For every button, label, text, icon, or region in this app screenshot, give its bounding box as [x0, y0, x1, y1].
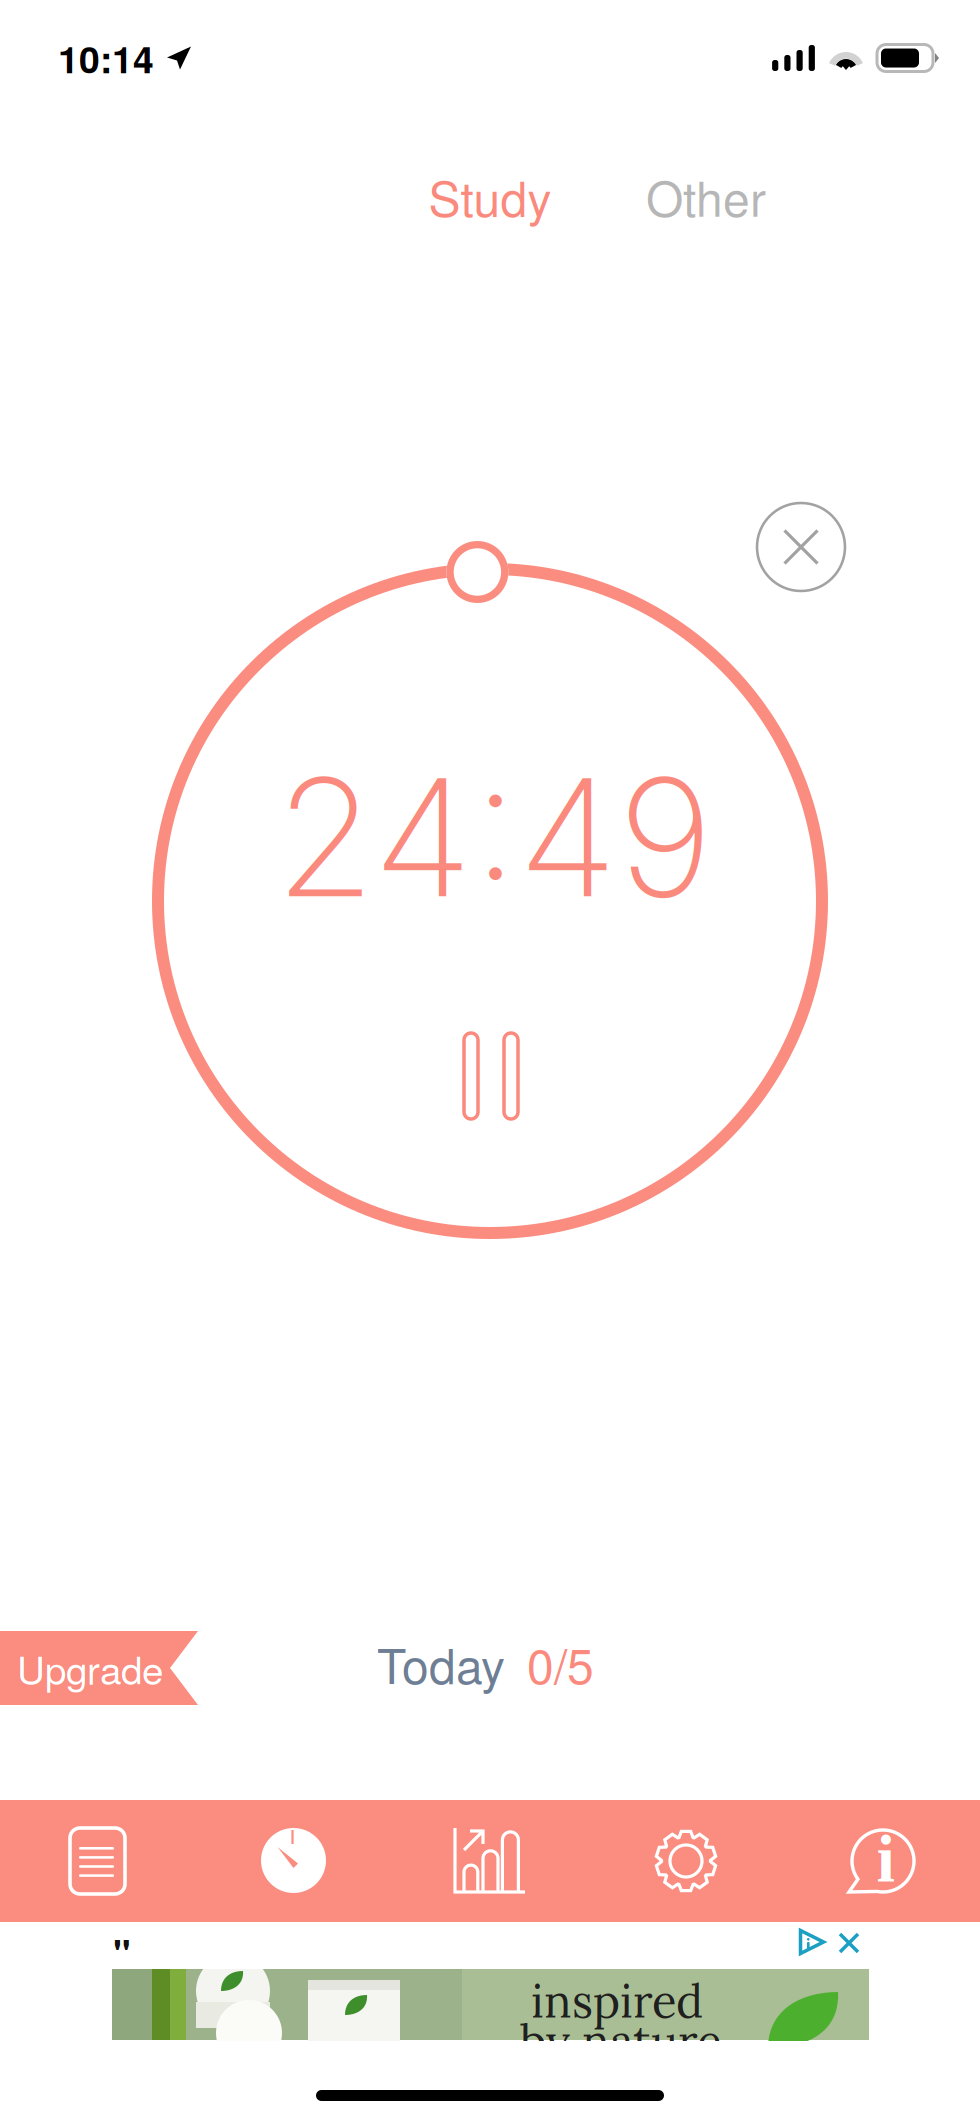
- button[interactable]: Study: [382, 148, 598, 244]
- staticText: by nature: [520, 2012, 722, 2070]
- button[interactable]: Tasks: [0, 1800, 196, 1922]
- staticText: 0/5: [527, 1629, 594, 1698]
- staticText: inspired: [531, 1972, 703, 2030]
- staticText: 24:49: [275, 739, 713, 935]
- button[interactable]: Settings: [588, 1800, 784, 1922]
- staticText: Today: [377, 1629, 505, 1698]
- button[interactable]: Ad information: [798, 1928, 826, 1956]
- staticText: Study: [428, 162, 551, 230]
- button[interactable]: Close timer: [757, 503, 845, 591]
- staticText: 10:14: [58, 31, 154, 85]
- staticText: Other: [646, 162, 766, 230]
- button[interactable]: Upgrade: [0, 1631, 198, 1705]
- button[interactable]: Other: [598, 148, 814, 244]
- button[interactable]: Statistics: [392, 1800, 588, 1922]
- staticText: i: [876, 1822, 895, 1896]
- staticText: Upgrade: [17, 1640, 163, 1696]
- button[interactable]: Timer: [196, 1800, 392, 1922]
- button[interactable]: Info: [784, 1800, 980, 1922]
- button[interactable]: Close ad: [838, 1932, 860, 1954]
- staticText: ": [113, 1925, 131, 1978]
